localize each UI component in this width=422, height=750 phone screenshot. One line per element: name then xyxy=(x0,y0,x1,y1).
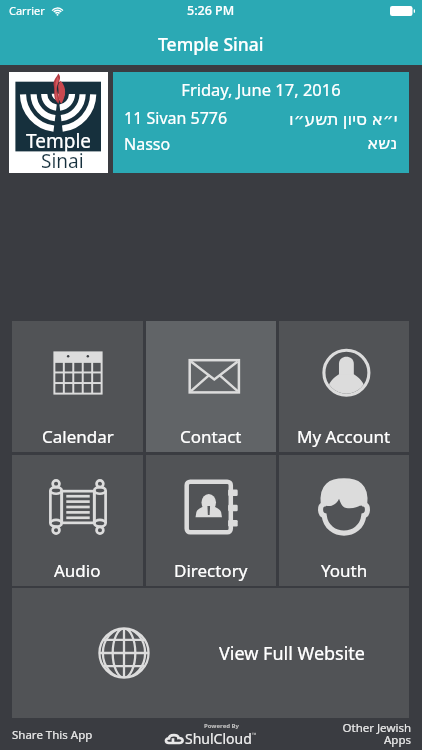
staticText: Audio xyxy=(54,559,101,582)
button[interactable]: Powered By xyxy=(165,721,257,748)
staticText: נשא xyxy=(367,133,398,153)
staticText: Powered By xyxy=(204,722,239,730)
staticText: Other Jewish Apps xyxy=(342,720,411,748)
staticText: Sinai xyxy=(41,148,84,174)
staticText: Share This App xyxy=(12,727,93,743)
button[interactable]: Other Jewish Apps xyxy=(330,719,422,750)
button[interactable]: Audio xyxy=(12,455,143,586)
staticText: Contact xyxy=(180,425,242,448)
staticText: Youth xyxy=(321,559,368,582)
button[interactable]: Youth xyxy=(279,455,409,586)
staticText: 5:26 PM xyxy=(187,2,235,19)
staticText: Friday, June 17, 2016 xyxy=(124,78,398,100)
button[interactable]: Directory xyxy=(146,455,276,586)
button[interactable]: My Account xyxy=(279,321,409,452)
button[interactable]: View Full Website xyxy=(12,588,409,718)
staticText: View Full Website xyxy=(219,641,366,666)
staticText: Nasso xyxy=(124,133,171,155)
button[interactable]: Calendar xyxy=(12,321,143,452)
staticText: My Account xyxy=(297,425,391,448)
button[interactable]: Contact xyxy=(146,321,276,452)
button[interactable]: Temple xyxy=(9,72,409,173)
staticText: Directory xyxy=(174,559,248,582)
staticText: Temple Sinai xyxy=(158,32,264,56)
staticText: Temple xyxy=(26,128,92,154)
staticText: Carrier xyxy=(9,3,45,18)
staticText: ™ xyxy=(252,731,257,739)
staticText: ShulCloud xyxy=(185,729,252,748)
staticText: 11 Sivan 5776 xyxy=(124,107,228,129)
button[interactable]: Share This App xyxy=(0,719,105,750)
staticText: י״א סיון תשע״ו xyxy=(289,107,398,130)
staticText: Calendar xyxy=(42,425,114,448)
